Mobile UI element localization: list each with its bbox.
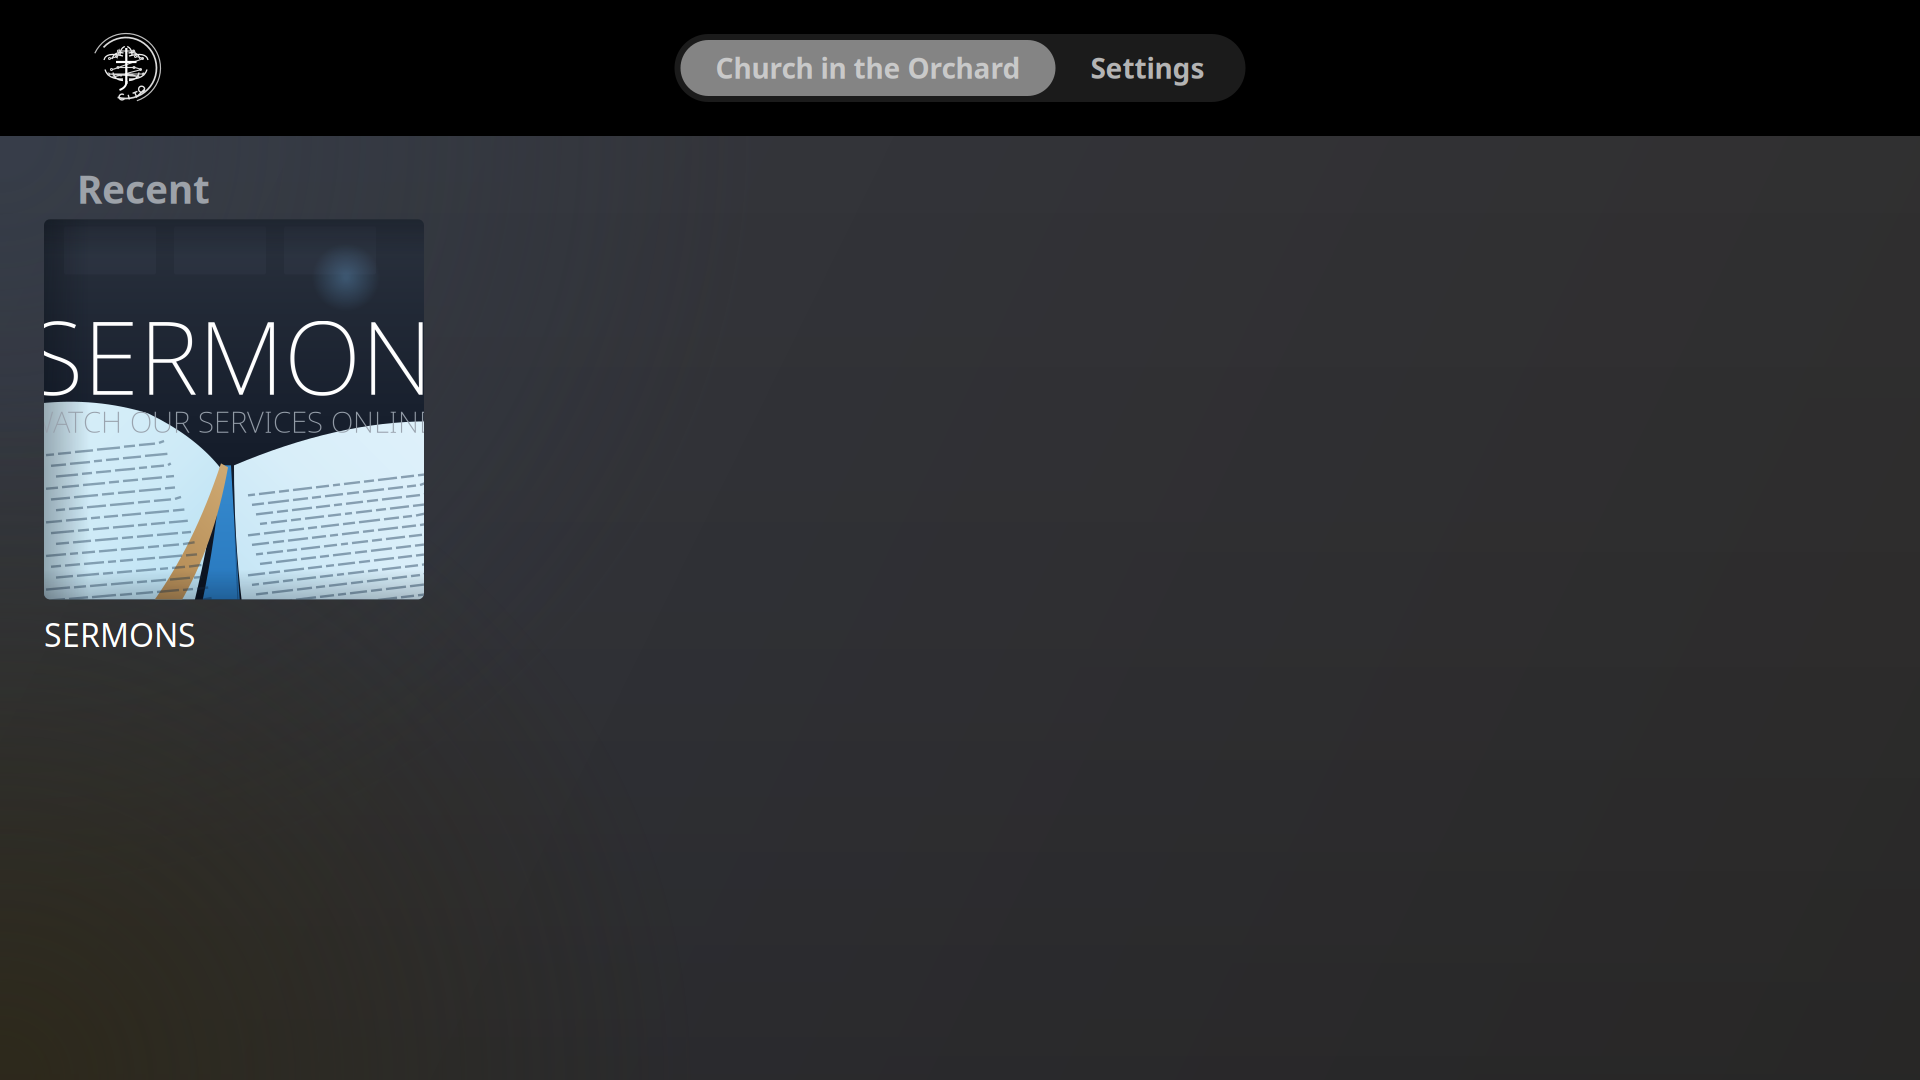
staticText: WATCH OUR SERVICES ONLINE [28, 402, 435, 441]
button[interactable]: Church in the Orchard [87, 29, 165, 107]
button[interactable]: Settings [1055, 40, 1239, 96]
staticText: Recent [77, 163, 210, 214]
button[interactable]: Church in the Orchard [680, 40, 1055, 96]
staticText: Settings [1090, 49, 1204, 87]
staticText: SERMONS [28, 288, 488, 423]
button[interactable]: SERMONS [44, 219, 424, 656]
staticText: SERMONS [44, 613, 196, 656]
staticText: Church in the Orchard [715, 49, 1020, 87]
